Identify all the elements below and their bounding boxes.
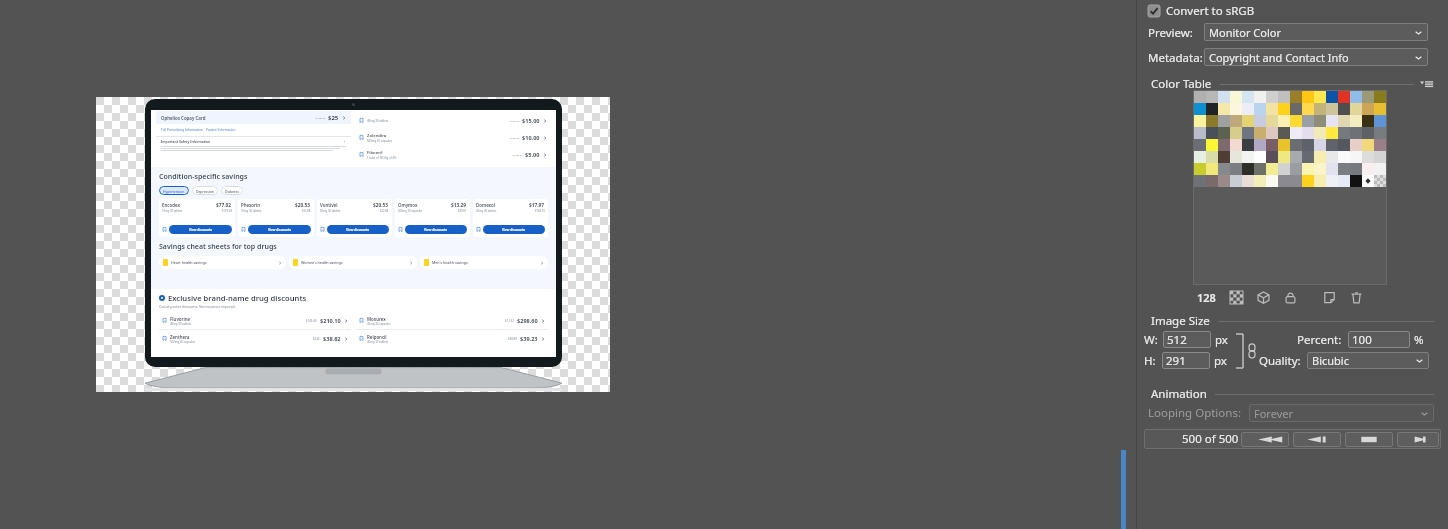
button[interactable]: Stop [1345,432,1393,447]
button[interactable]: 291 [1162,352,1210,369]
button[interactable]: Heart health savings [159,256,286,269]
button[interactable]: Omymox [395,199,470,237]
button[interactable]: Zenthera [159,330,351,347]
button[interactable]: Delete color [1350,291,1363,304]
button[interactable]: Fibonril [355,146,551,163]
button[interactable]: View discounts [248,225,311,234]
button[interactable]: Diabetes [221,186,243,195]
button[interactable]: Men's health savings [420,256,548,269]
button[interactable]: Women's health savings [289,256,417,269]
button[interactable]: Lock color [1284,291,1297,304]
button[interactable]: Constrain proportions [1247,343,1257,359]
button[interactable]: Vontivel [317,199,392,237]
button[interactable]: View discounts [327,225,389,234]
button[interactable]: View discounts [483,225,545,234]
button[interactable]: Web snap [1257,291,1270,304]
button[interactable]: New color [1323,291,1336,304]
button[interactable]: Monitor Color [1204,23,1428,41]
button[interactable]: Transparency [1230,291,1243,304]
button[interactable]: View discounts [405,225,467,234]
button[interactable]: 40mg 30 tablets [355,112,551,129]
button[interactable]: Phexorin [238,199,314,237]
button[interactable]: Fluvorine [159,312,351,329]
button[interactable]: Convert to sRGB [1148,3,1255,19]
button[interactable]: 512 [1163,331,1211,348]
